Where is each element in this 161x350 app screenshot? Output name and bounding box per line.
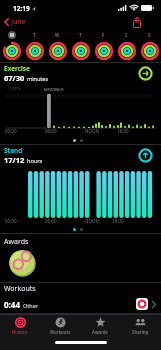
staticText: S <box>125 32 128 38</box>
staticText: 00:00 <box>5 218 17 224</box>
staticText: Workouts <box>4 284 36 294</box>
staticText: T <box>79 32 82 38</box>
staticText: 17/12 <box>4 155 25 165</box>
button[interactable]: Sharing <box>120 315 160 336</box>
staticText: 00:00 <box>5 128 17 134</box>
staticText: Other <box>23 302 39 309</box>
staticText: 67/30 <box>4 73 25 83</box>
staticText: 06:00 <box>45 128 57 134</box>
button[interactable]: History <box>0 315 40 336</box>
staticText: S <box>148 32 151 38</box>
staticText: MYZONE® <box>44 87 64 92</box>
button[interactable] <box>23 40 46 62</box>
button[interactable]: Workouts <box>40 315 80 336</box>
button[interactable]: 0:44 <box>0 295 161 313</box>
staticText: Awards <box>4 237 29 247</box>
staticText: Awards <box>92 329 108 335</box>
button[interactable] <box>138 40 161 62</box>
button[interactable] <box>115 40 138 62</box>
staticText: 15MIN <box>8 86 21 91</box>
staticText: F <box>102 32 105 38</box>
button[interactable] <box>92 40 115 62</box>
staticText: M <box>10 32 15 38</box>
button[interactable] <box>138 148 153 163</box>
button[interactable]: Awards <box>80 315 120 336</box>
staticText: Stand <box>4 146 23 155</box>
staticText: Exercise <box>4 64 30 73</box>
staticText: 12:19 <box>13 4 30 13</box>
button[interactable] <box>0 248 161 282</box>
staticText: T <box>33 32 36 38</box>
button[interactable] <box>46 40 69 62</box>
staticText: 18:00 <box>117 128 129 134</box>
staticText: minutes <box>27 75 49 82</box>
button[interactable] <box>138 66 153 81</box>
staticText: W <box>55 32 60 38</box>
staticText: hours <box>27 157 43 164</box>
button[interactable]: June <box>4 17 26 27</box>
staticText: 18:00 <box>112 218 124 224</box>
staticText: NOON <box>85 218 99 224</box>
staticText: Sharing <box>132 329 149 335</box>
staticText: 06:00 <box>45 218 57 224</box>
button[interactable]: Awards <box>0 234 161 248</box>
button[interactable] <box>133 17 141 28</box>
button[interactable] <box>69 40 92 62</box>
staticText: June <box>11 17 26 27</box>
staticText: Workouts <box>50 329 71 335</box>
button[interactable] <box>0 40 23 62</box>
staticText: NOON <box>85 128 99 134</box>
staticText: History <box>12 329 28 335</box>
staticText: 0:44 <box>4 299 20 310</box>
